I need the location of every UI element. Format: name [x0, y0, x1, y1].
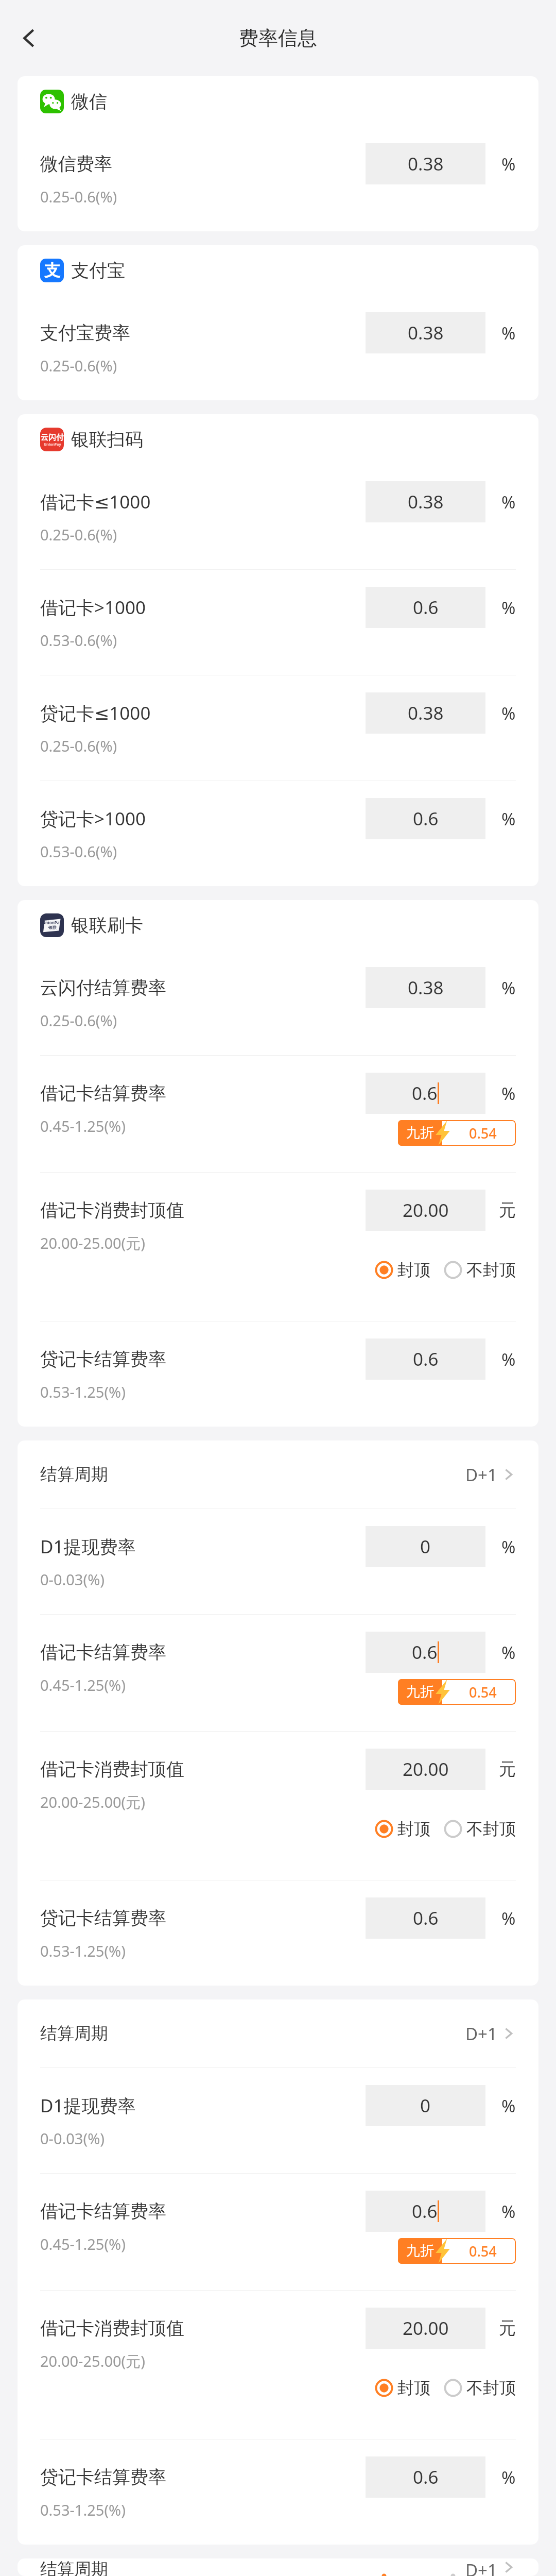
staticText: 0.45-1.25(%): [40, 1675, 126, 1695]
button[interactable]: Back: [4, 13, 54, 63]
staticText: 微信: [71, 90, 107, 113]
staticText: UnionPay: [42, 920, 62, 925]
button[interactable]: 贷记卡>1000: [18, 781, 538, 886]
button[interactable]: 封顶: [375, 1819, 430, 1839]
staticText: 不封顶: [466, 1260, 516, 1280]
staticText: 0.38: [408, 151, 444, 176]
staticText: 元: [499, 1199, 516, 1221]
staticText: 元: [499, 1758, 516, 1780]
staticText: %: [501, 807, 516, 831]
staticText: 九折: [406, 1683, 434, 1701]
button[interactable]: 结算周期: [18, 1440, 538, 1509]
staticText: 借记卡结算费率: [40, 1641, 366, 1664]
staticText: 0.38: [408, 975, 444, 1000]
staticText: 0.54: [469, 1683, 497, 1702]
staticText: 不封顶: [466, 2378, 516, 2398]
staticText: D+1: [465, 1463, 497, 1486]
button[interactable]: 九折: [398, 1120, 516, 1146]
staticText: 封顶: [397, 1819, 430, 1839]
staticText: 0.25-0.6(%): [40, 355, 117, 376]
staticText: 借记卡消费封顶值: [40, 1758, 366, 1781]
staticText: %: [501, 2094, 516, 2117]
staticText: 0: [420, 2093, 431, 2118]
staticText: 云闪付: [41, 433, 64, 443]
staticText: UnionPay: [44, 442, 61, 447]
button[interactable]: 支付宝费率: [18, 295, 538, 400]
button[interactable]: 封顶: [375, 1260, 430, 1280]
staticText: %: [501, 1348, 516, 1371]
staticText: %: [501, 1535, 516, 1558]
staticText: 20.00-25.00(元): [40, 2351, 145, 2371]
staticText: 借记卡结算费率: [40, 1082, 366, 1105]
staticText: 20.00-25.00(元): [40, 1792, 145, 1812]
button[interactable]: 借记卡结算费率: [18, 1056, 538, 1172]
staticText: 0.6: [413, 595, 439, 620]
button[interactable]: 借记卡≤1000: [18, 464, 538, 569]
staticText: %: [501, 152, 516, 176]
button[interactable]: 借记卡结算费率: [18, 1615, 538, 1731]
staticText: 0.53-0.6(%): [40, 841, 117, 861]
staticText: %: [501, 1082, 516, 1105]
button[interactable]: 贷记卡结算费率: [18, 1321, 538, 1427]
staticText: 九折: [406, 2242, 434, 2260]
staticText: 封顶: [397, 2378, 430, 2398]
staticText: 0.25-0.6(%): [40, 187, 117, 207]
button[interactable]: 借记卡消费封顶值: [18, 1173, 538, 1321]
button[interactable]: 微信费率: [18, 126, 538, 231]
staticText: 0.6: [413, 1347, 439, 1371]
staticText: 借记卡消费封顶值: [40, 1199, 366, 1222]
button[interactable]: 不封顶: [444, 2378, 516, 2398]
staticText: %: [501, 2200, 516, 2223]
staticText: 不封顶: [466, 1819, 516, 1839]
staticText: 借记卡结算费率: [40, 2200, 366, 2223]
staticText: 0.25-0.6(%): [40, 736, 117, 756]
staticText: 费率信息: [239, 26, 317, 50]
staticText: 0.6: [412, 1640, 438, 1665]
staticText: 银联: [48, 925, 57, 930]
button[interactable]: 不封顶: [444, 1819, 516, 1839]
button[interactable]: 不封顶: [444, 1260, 516, 1280]
staticText: %: [501, 1641, 516, 1664]
button[interactable]: 贷记卡结算费率: [18, 1880, 538, 1986]
button[interactable]: 借记卡>1000: [18, 570, 538, 675]
staticText: 0.53-1.25(%): [40, 1941, 126, 1961]
staticText: 20.00: [403, 2316, 449, 2341]
staticText: 借记卡>1000: [40, 595, 366, 620]
button[interactable]: 借记卡结算费率: [18, 2174, 538, 2290]
staticText: 0.25-0.6(%): [40, 524, 117, 545]
staticText: 0.54: [469, 2242, 497, 2261]
button[interactable]: 借记卡消费封顶值: [18, 2291, 538, 2439]
staticText: D+1: [465, 2558, 497, 2576]
staticText: 20.00: [403, 1198, 449, 1223]
staticText: 贷记卡结算费率: [40, 1348, 366, 1370]
staticText: %: [501, 2466, 516, 2489]
button[interactable]: 结算周期: [18, 1999, 538, 2067]
button[interactable]: 结算周期: [18, 2558, 538, 2576]
button[interactable]: 云闪付结算费率: [18, 950, 538, 1055]
button[interactable]: 九折: [398, 2238, 516, 2264]
staticText: 0-0.03(%): [40, 1569, 105, 1589]
staticText: %: [501, 1907, 516, 1930]
staticText: 0.6: [413, 806, 439, 831]
staticText: %: [501, 702, 516, 725]
staticText: 0.6: [412, 1081, 438, 1106]
staticText: %: [501, 490, 516, 514]
staticText: 0.6: [413, 2465, 439, 2489]
staticText: 0.25-0.6(%): [40, 1010, 117, 1030]
staticText: 0.45-1.25(%): [40, 1116, 126, 1136]
staticText: 封顶: [397, 1260, 430, 1280]
button[interactable]: 贷记卡结算费率: [18, 2439, 538, 2545]
button[interactable]: 借记卡消费封顶值: [18, 1732, 538, 1880]
staticText: %: [501, 976, 516, 999]
button[interactable]: D1提现费率: [18, 1509, 538, 1614]
staticText: 0.6: [412, 2199, 438, 2224]
button[interactable]: 九折: [398, 1679, 516, 1705]
button[interactable]: D1提现费率: [18, 2068, 538, 2173]
button[interactable]: 封顶: [375, 2378, 430, 2398]
staticText: 银联扫码: [71, 428, 143, 451]
button[interactable]: 贷记卡≤1000: [18, 675, 538, 781]
staticText: D1提现费率: [40, 1534, 366, 1559]
staticText: 贷记卡>1000: [40, 806, 366, 831]
staticText: 贷记卡≤1000: [40, 701, 366, 725]
staticText: 0.53-0.6(%): [40, 630, 117, 650]
